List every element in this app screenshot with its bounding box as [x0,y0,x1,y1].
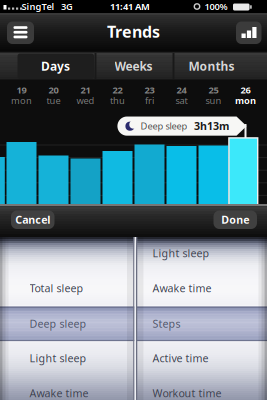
staticText: 26 [240,84,250,96]
staticText: mon [11,94,32,107]
staticText: SingTel [21,0,54,13]
staticText: 100% [204,0,227,13]
staticText: Light sleep [29,351,86,365]
staticText: 22 [112,84,122,96]
staticText: fri [145,94,154,107]
button[interactable]: Days [0,0,267,400]
staticText: sat [175,94,187,107]
staticText: mon [235,94,256,107]
staticText: 24 [176,84,186,96]
button[interactable]: Done [0,0,267,400]
staticText: Awake time [152,281,211,295]
staticText: Days [41,58,70,74]
staticText: Deep sleep [29,316,86,331]
staticText: tue [46,94,60,107]
button[interactable]: Weeks [0,0,267,400]
staticText: 21 [80,84,90,96]
staticText: 23 [144,84,154,96]
staticText: Workout time [152,386,221,400]
staticText: 20 [48,84,58,96]
staticText: Cancel [15,213,50,227]
staticText: Deep sleep [140,120,187,132]
staticText: Active time [152,351,208,365]
staticText: 3G [61,0,73,13]
button[interactable]: Months [0,0,267,400]
button[interactable] [0,0,267,400]
staticText: Steps [152,316,180,331]
staticText: Awake time [29,386,88,400]
staticText: 19 [16,84,26,96]
staticText: Done [221,213,249,227]
button[interactable] [0,0,267,400]
staticText: wed [76,94,94,107]
staticText: thu [110,94,125,107]
staticText: Weeks [114,58,152,74]
staticText: 11:41 AM [110,0,150,13]
staticText: Light sleep [152,246,209,260]
staticText: sun [205,94,221,107]
staticText: 3h13m [194,119,229,133]
button[interactable]: Cancel [0,0,267,400]
staticText: Total sleep [29,281,83,295]
staticText: Trends [107,21,160,42]
staticText: Months [188,58,234,74]
staticText: 25 [208,84,218,96]
